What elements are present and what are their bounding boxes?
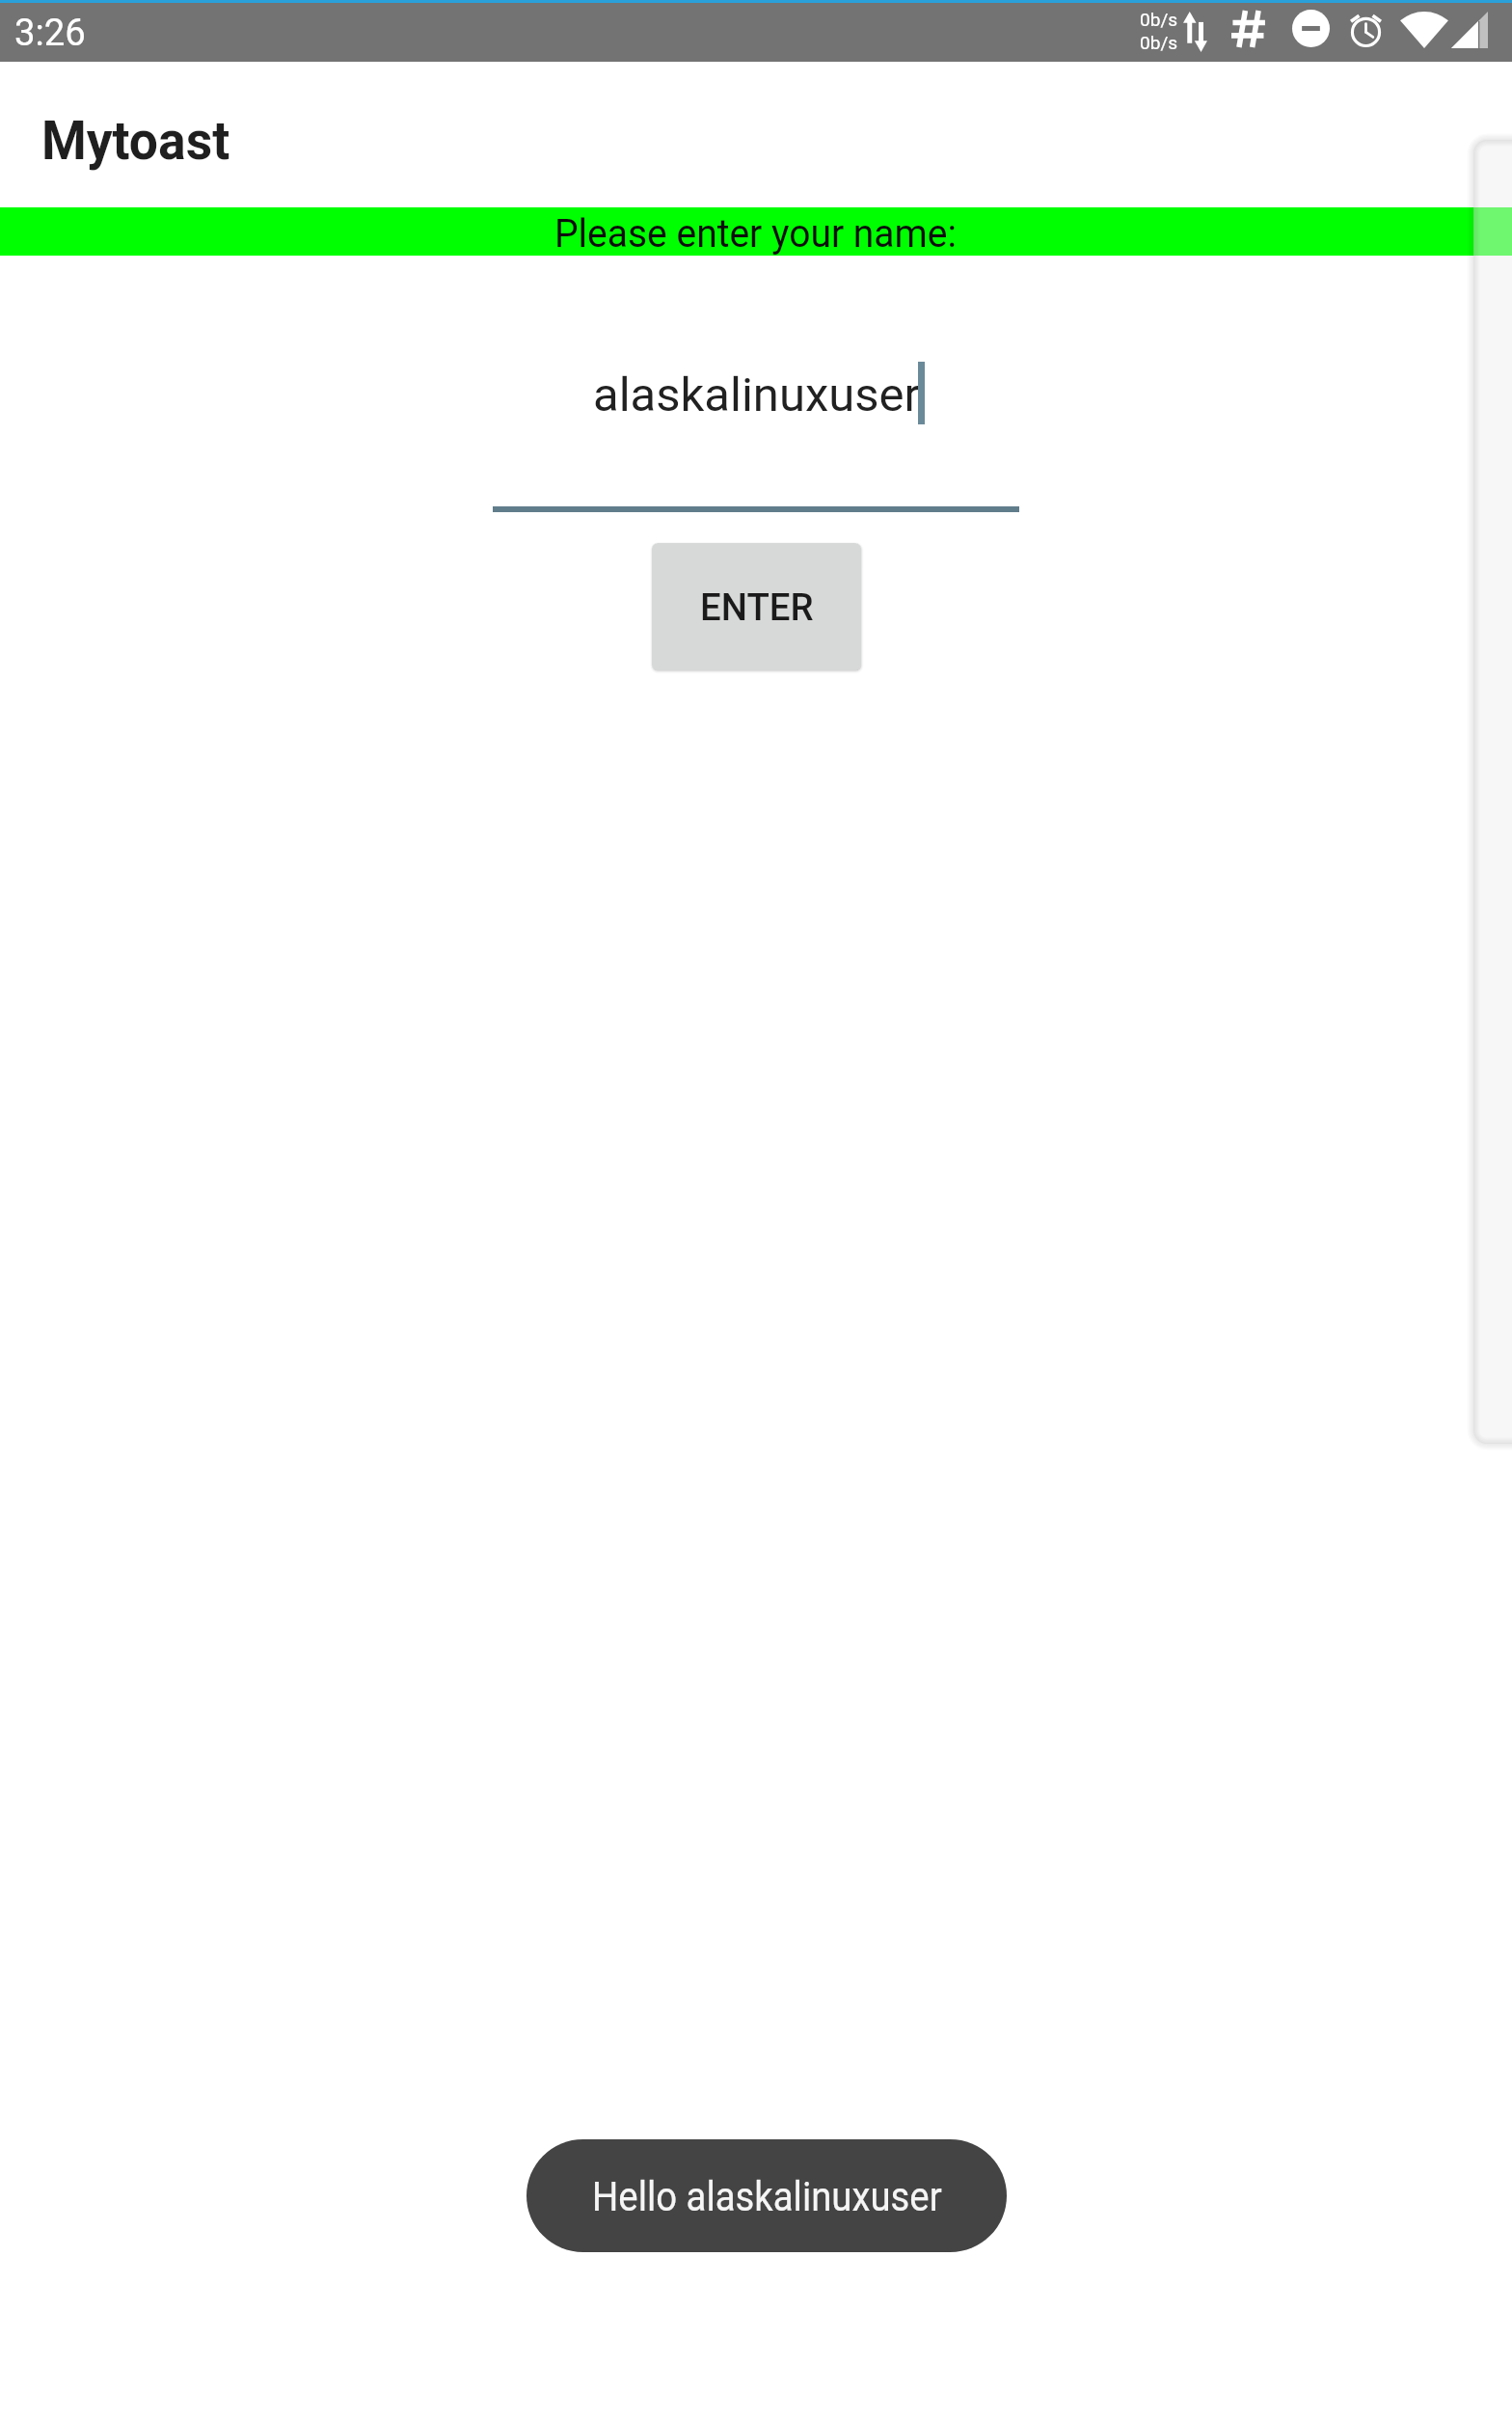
staticText: 3:26 — [14, 12, 86, 55]
other: Mobile signal — [1451, 12, 1488, 48]
staticText: alaskalinuxuser — [593, 367, 921, 422]
staticText: ENTER — [700, 585, 814, 629]
other: VPN — [1231, 11, 1266, 47]
button[interactable]: ENTER — [652, 543, 861, 670]
staticText: 0b/s — [1140, 32, 1178, 53]
staticText: Please enter your name: — [554, 210, 957, 257]
other: Do not disturb — [1292, 10, 1330, 47]
other: Network speed — [1183, 12, 1207, 52]
staticText: Hello alaskalinuxuser — [592, 2171, 942, 2220]
other: Wi-Fi — [1401, 12, 1447, 48]
button[interactable]: alaskalinuxuser — [493, 342, 1019, 512]
staticText: Mytoast — [41, 109, 230, 172]
staticText: 0b/s — [1140, 9, 1178, 30]
other: Alarm set — [1348, 10, 1384, 47]
